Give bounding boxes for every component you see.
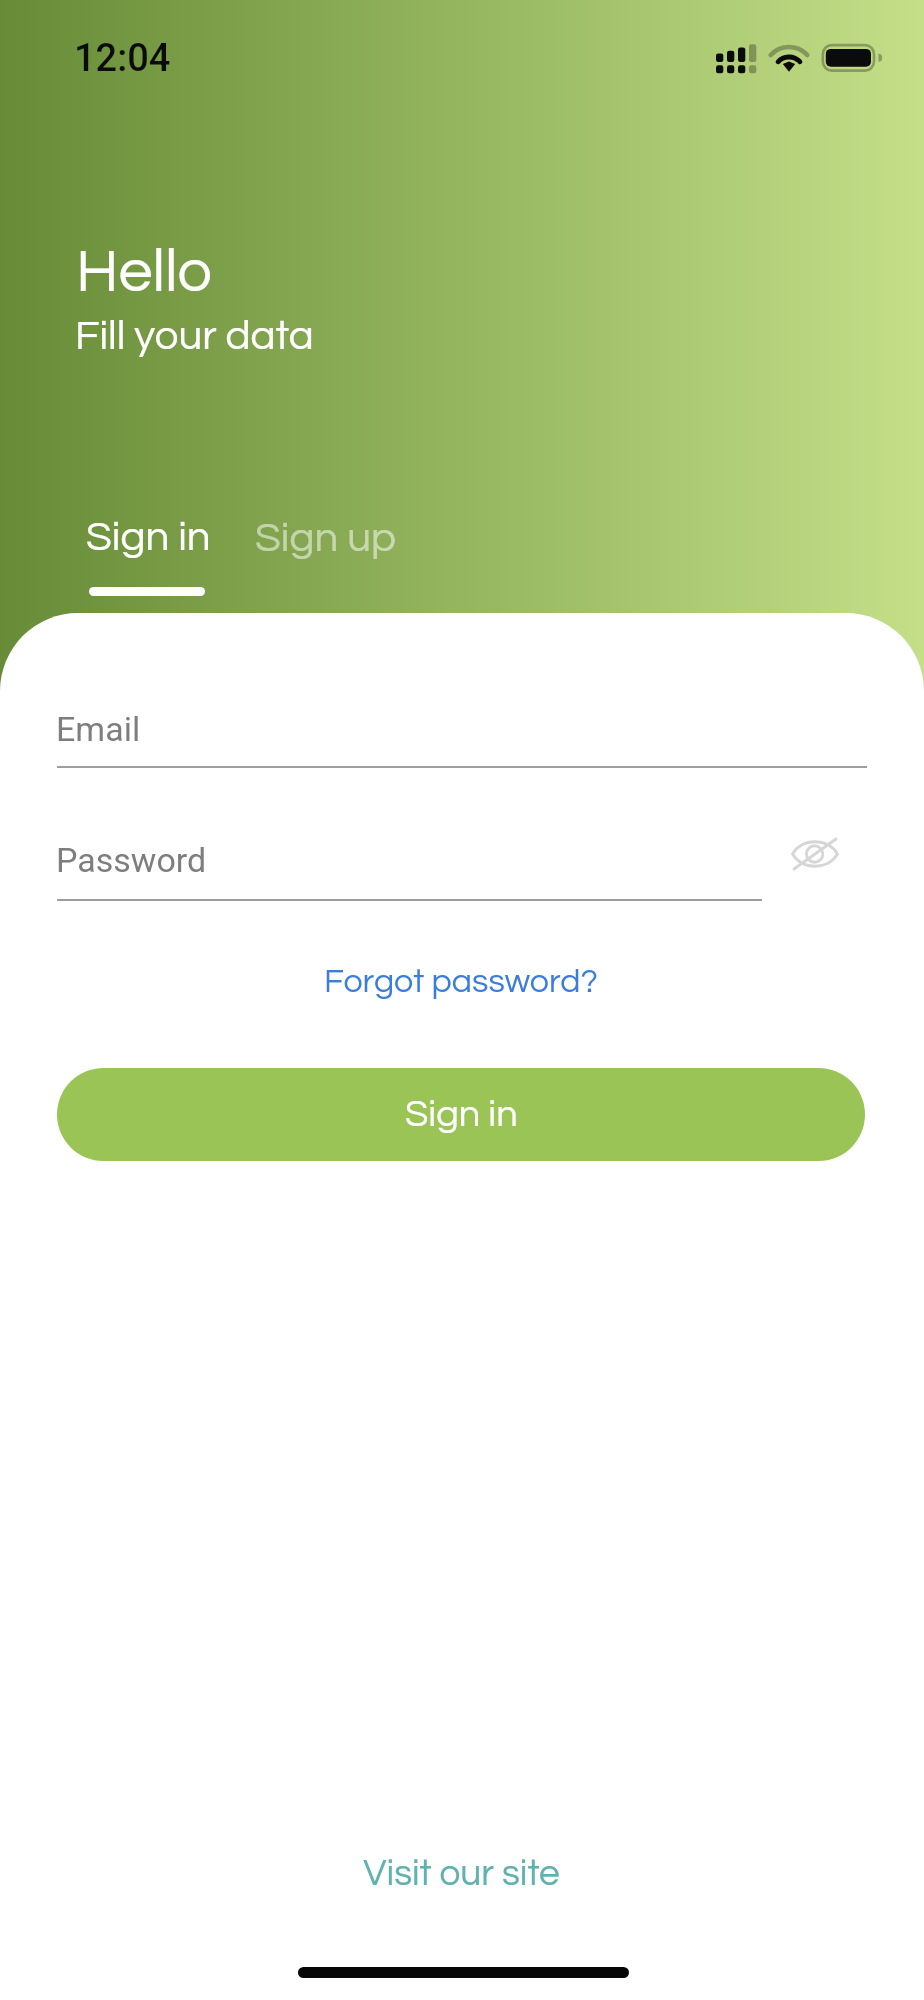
staticText: Sign in bbox=[405, 1095, 518, 1134]
button[interactable]: Sign in bbox=[74, 502, 220, 596]
button[interactable]: Visit our site bbox=[329, 1846, 593, 1902]
staticText: Visit our site bbox=[363, 1855, 560, 1893]
staticText: Forgot password? bbox=[324, 964, 598, 999]
staticText: Sign in bbox=[86, 516, 211, 559]
staticText: Sign up bbox=[255, 517, 396, 560]
button[interactable]: Sign up bbox=[243, 511, 407, 573]
button[interactable]: Sign in bbox=[57, 1068, 865, 1161]
button[interactable]: Show password bbox=[788, 832, 842, 872]
staticText: 12:04 bbox=[74, 36, 171, 81]
staticText: Fill your data bbox=[75, 315, 314, 358]
button[interactable]: Forgot password? bbox=[296, 952, 626, 1010]
staticText: Password bbox=[56, 840, 207, 880]
staticText: Hello bbox=[76, 241, 212, 304]
staticText: Email bbox=[56, 709, 141, 749]
